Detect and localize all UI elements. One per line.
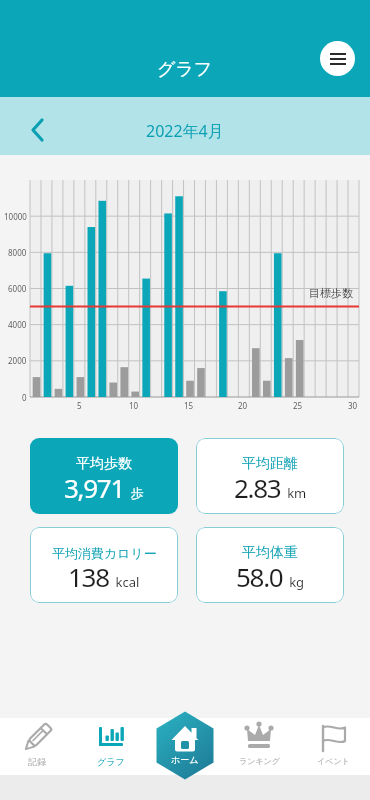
staticText: 3,971 歩 (64, 470, 144, 505)
staticText: ランキング (239, 756, 280, 766)
button[interactable]: イベント (303, 718, 363, 775)
staticText: 6000 (8, 283, 27, 294)
button[interactable] (196, 527, 344, 603)
button[interactable]: ホーム (156, 711, 214, 780)
staticText: 2022年4月 (146, 120, 224, 142)
staticText: 30 (348, 400, 358, 411)
staticText: イベント (317, 756, 350, 766)
button[interactable]: グラフ (81, 718, 141, 775)
staticText: 8000 (8, 247, 27, 258)
button[interactable] (196, 438, 344, 514)
staticText: グラフ (97, 756, 125, 767)
staticText: グラフ (157, 58, 213, 81)
button[interactable] (320, 41, 355, 76)
staticText: 15 (184, 400, 194, 411)
staticText: 10000 (4, 211, 27, 222)
staticText: 2000 (8, 355, 27, 366)
staticText: 記録 (28, 756, 46, 767)
button[interactable] (30, 438, 178, 514)
staticText: 20 (238, 400, 248, 411)
button[interactable]: 記録 (7, 718, 67, 775)
staticText: 58.0 kg (236, 559, 305, 594)
staticText: 138 kcal (68, 559, 140, 594)
button[interactable] (20, 112, 56, 148)
staticText: 目標歩数 (309, 286, 353, 300)
staticText: ホーム (171, 754, 199, 765)
button[interactable] (30, 527, 178, 603)
staticText: 0 (22, 392, 27, 403)
staticText: 25 (293, 400, 303, 411)
staticText: 4000 (8, 319, 27, 330)
staticText: 5 (77, 400, 82, 411)
staticText: 平均距離 (242, 455, 298, 473)
staticText: 平均体重 (242, 544, 298, 562)
staticText: 平均歩数 (76, 455, 132, 473)
staticText: 10 (129, 400, 139, 411)
button[interactable]: ランキング (229, 718, 289, 775)
staticText: 2.83 km (234, 470, 307, 505)
staticText: 平均消費カロリー (52, 545, 157, 561)
